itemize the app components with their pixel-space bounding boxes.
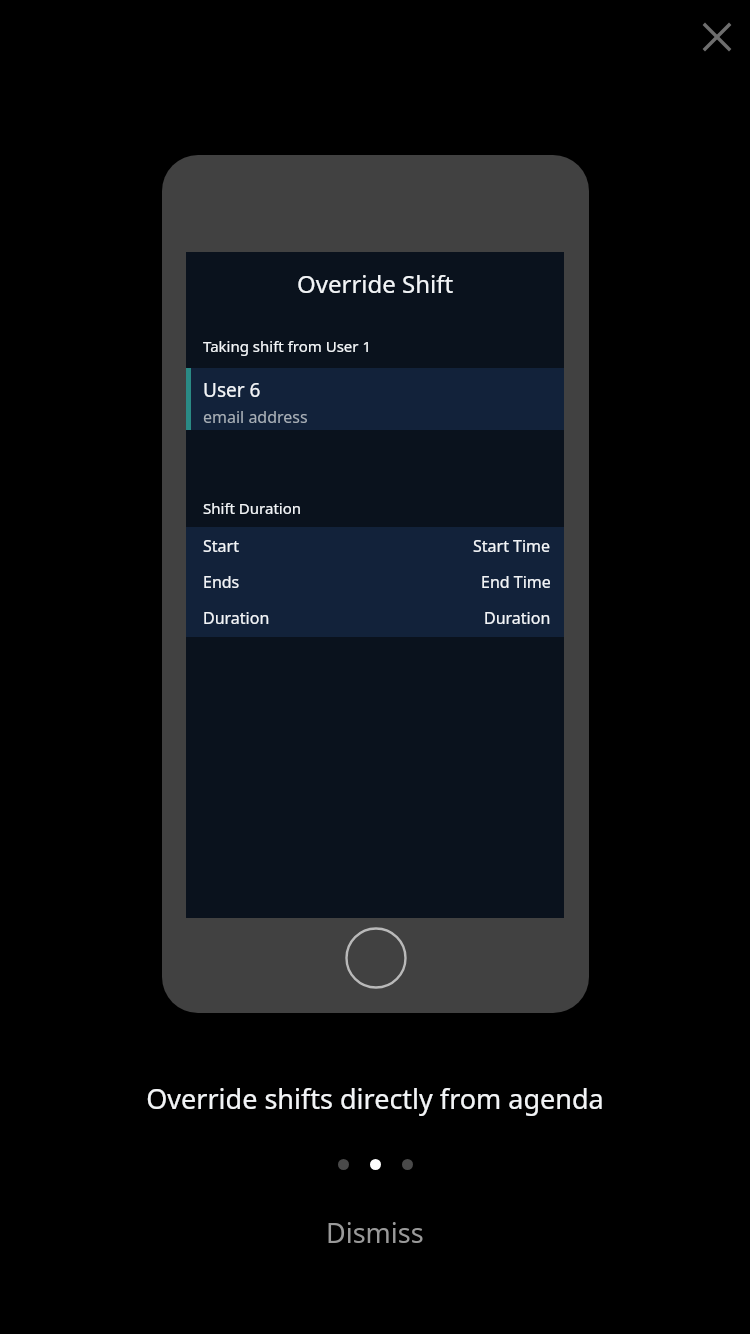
- button[interactable]: Close: [686, 6, 748, 68]
- staticText: Dismiss: [326, 1214, 424, 1251]
- staticText: End Time: [481, 571, 551, 593]
- button[interactable]: Dismiss: [298, 1204, 452, 1261]
- staticText: Start Time: [473, 535, 551, 557]
- staticText: email address: [203, 406, 308, 428]
- button[interactable]: Home: [345, 927, 407, 989]
- staticText: Start: [203, 535, 239, 557]
- staticText: Override shifts directly from agenda: [146, 1080, 604, 1117]
- staticText: Shift Duration: [203, 498, 302, 518]
- staticText: Override Shift: [297, 267, 454, 300]
- staticText: Ends: [203, 571, 240, 593]
- button[interactable]: Ends: [186, 564, 564, 600]
- button[interactable]: Start: [186, 528, 564, 564]
- staticText: Taking shift from User 1: [203, 336, 371, 356]
- staticText: User 6: [203, 377, 261, 403]
- button[interactable]: User 6: [186, 368, 564, 430]
- staticText: Duration: [203, 607, 270, 629]
- staticText: Duration: [484, 607, 551, 629]
- button[interactable]: Duration: [186, 600, 564, 636]
